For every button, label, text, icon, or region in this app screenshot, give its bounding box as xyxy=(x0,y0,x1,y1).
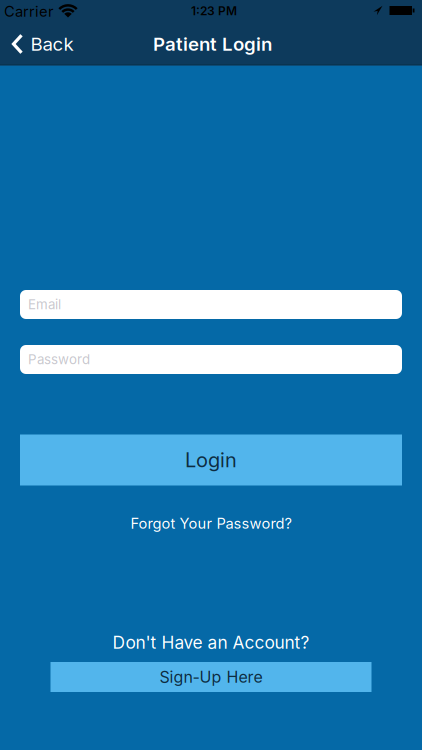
staticText: Email xyxy=(28,297,61,312)
button[interactable]: Password xyxy=(20,345,402,374)
staticText: Don't Have an Account? xyxy=(112,632,309,653)
button[interactable]: Email xyxy=(20,290,402,319)
staticText: Forgot Your Password? xyxy=(130,515,291,532)
button[interactable]: Login xyxy=(20,434,402,485)
staticText: 1:23 PM xyxy=(191,4,237,18)
staticText: Password xyxy=(28,352,90,367)
staticText: Login xyxy=(185,448,237,472)
staticText: Sign-Up Here xyxy=(159,668,262,686)
button[interactable]: Back xyxy=(13,33,73,55)
staticText: Patient Login xyxy=(153,33,272,55)
button[interactable]: Forgot Your Password? xyxy=(130,515,291,532)
staticText: Back xyxy=(30,33,73,55)
button[interactable]: Sign-Up Here xyxy=(50,662,371,692)
staticText: Carrier xyxy=(4,3,54,20)
